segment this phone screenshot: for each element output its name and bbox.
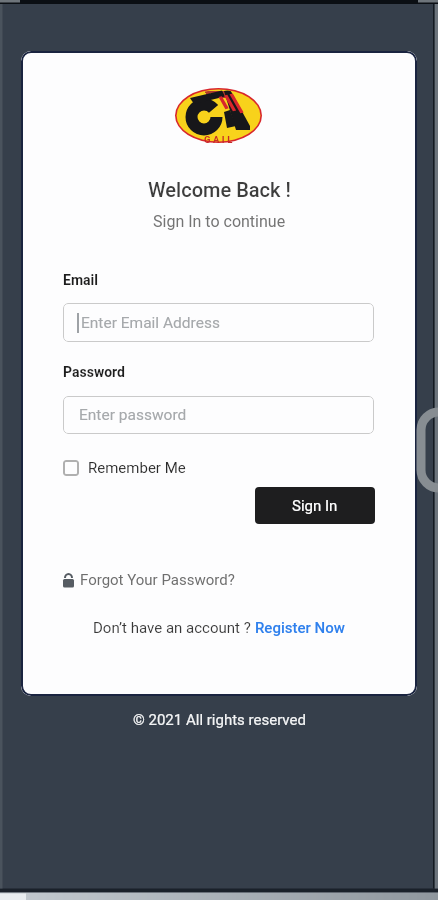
staticText: GAIL [204,134,235,145]
button[interactable]: Forgot Your Password? [62,571,235,589]
button[interactable]: Enter Email Address [63,303,374,342]
staticText: Enter Email Address [81,314,220,332]
staticText: © 2021 All rights reserved [133,711,306,729]
staticText: Email [63,272,98,288]
button[interactable]: Enter password [63,396,374,434]
button[interactable]: Sign In [255,487,375,524]
button[interactable]: Remember Me [63,459,186,477]
staticText: Sign In [292,497,338,515]
staticText: Password [63,364,125,380]
staticText: Don’t have an account ? [93,619,255,637]
button[interactable]: Register Now [255,619,345,637]
staticText: Welcome Back ! [148,178,291,201]
staticText: Sign In to continue [153,212,286,231]
staticText: Forgot Your Password? [80,571,235,589]
staticText: Remember Me [88,459,186,477]
staticText: Enter password [79,406,187,424]
